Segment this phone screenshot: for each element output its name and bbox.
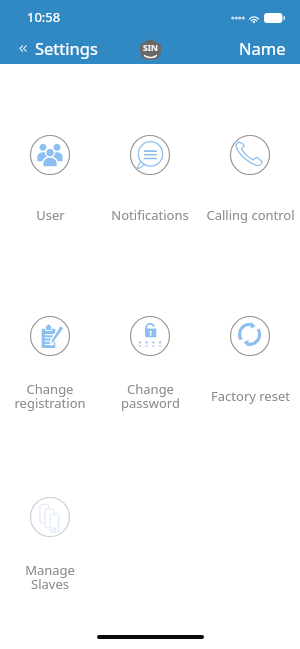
button[interactable]: Notifications xyxy=(100,123,200,235)
staticText: Calling control xyxy=(206,206,295,224)
staticText: SIN xyxy=(143,42,158,54)
staticText: Manage Slaves xyxy=(25,561,75,593)
staticText: 10:58 xyxy=(27,8,61,26)
button[interactable]: Name xyxy=(229,34,300,62)
button[interactable]: Settings xyxy=(0,34,104,62)
staticText: Notifications xyxy=(111,206,189,224)
staticText: Name xyxy=(239,37,286,59)
button[interactable]: SIN logo xyxy=(140,39,161,60)
staticText: Factory reset xyxy=(211,387,290,405)
staticText: Change registration xyxy=(14,380,86,412)
staticText: User xyxy=(36,206,65,224)
staticText: Change password xyxy=(121,380,180,412)
staticText: Settings xyxy=(35,37,98,59)
button[interactable]: Change registration xyxy=(0,304,100,416)
button[interactable]: Calling control xyxy=(200,123,300,235)
button[interactable]: Factory reset xyxy=(200,304,300,416)
button[interactable]: User xyxy=(0,123,100,235)
button[interactable]: Change password xyxy=(100,304,200,416)
button[interactable]: Manage Slaves xyxy=(0,485,100,597)
